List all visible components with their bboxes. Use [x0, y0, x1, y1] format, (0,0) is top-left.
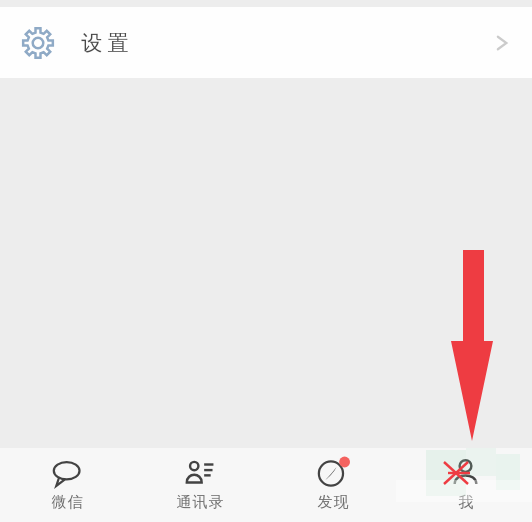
staticText: 通讯录 [176, 493, 224, 512]
button[interactable]: 通讯录 [133, 448, 266, 522]
button[interactable]: 我 [399, 448, 532, 522]
staticText: 设置 [79, 30, 131, 56]
other: Open settings [489, 30, 515, 56]
staticText: 微信 [51, 493, 83, 512]
button[interactable]: 发现 [266, 448, 399, 522]
button[interactable]: 设置 [0, 7, 532, 78]
button[interactable]: 微信 [0, 448, 133, 522]
staticText: 发现 [317, 493, 349, 512]
staticText: 我 [458, 493, 474, 512]
